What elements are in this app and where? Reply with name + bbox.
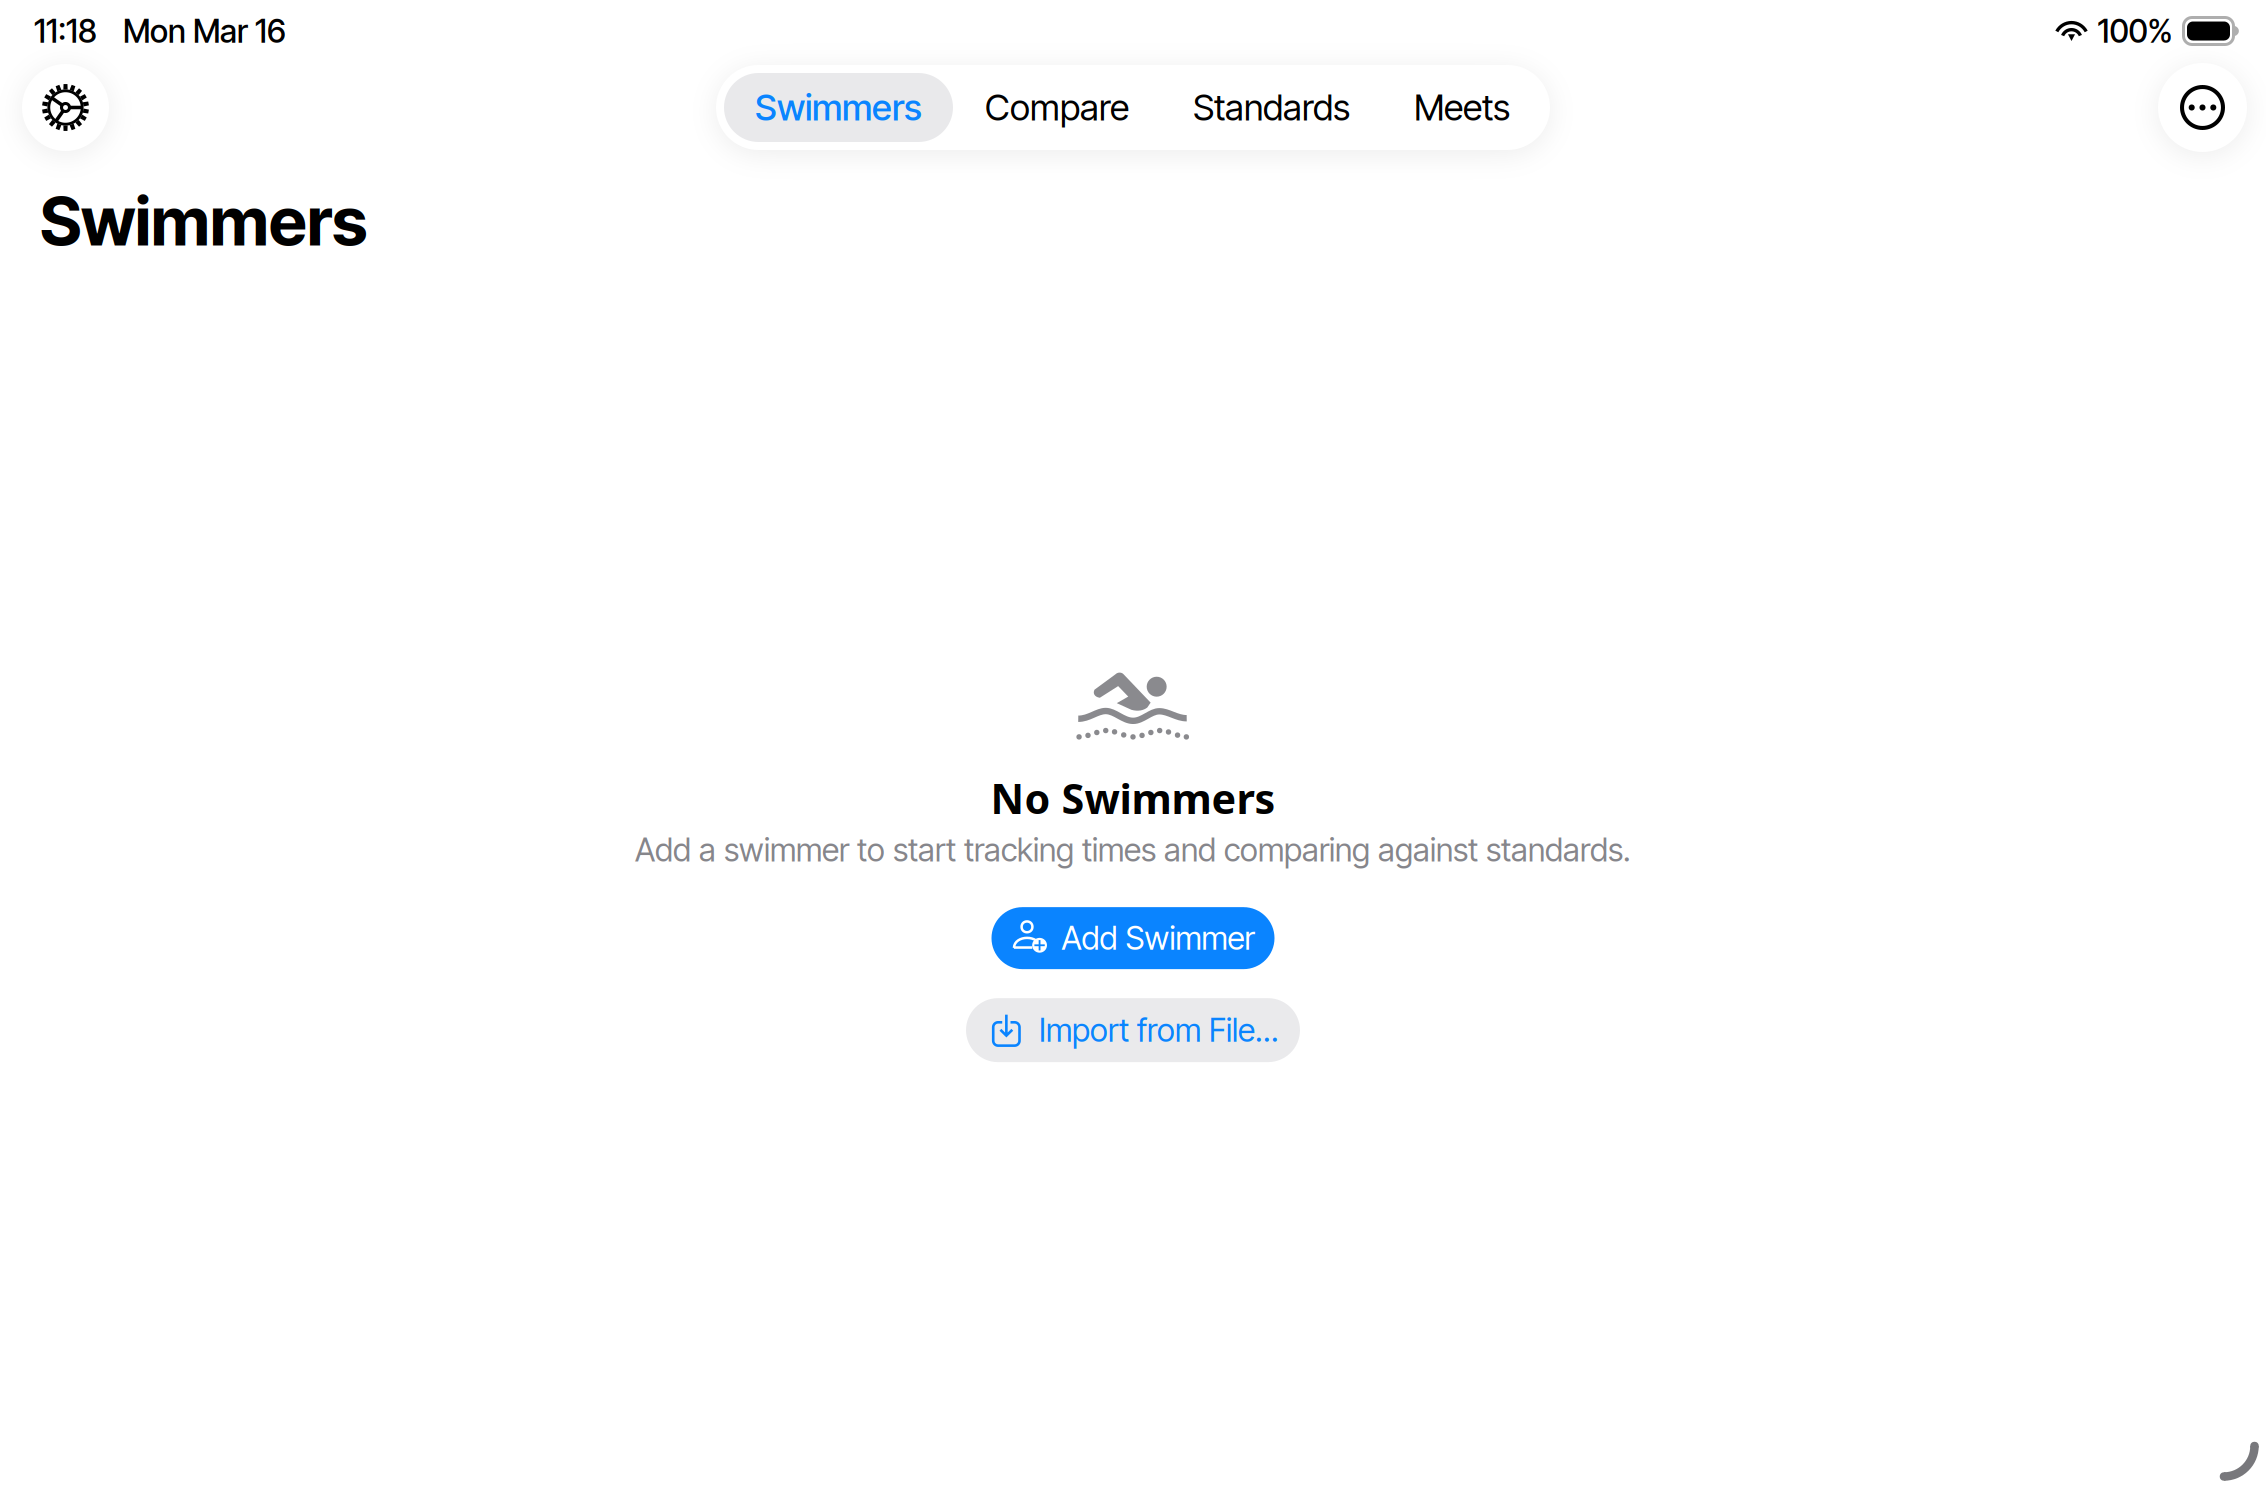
staticText: 100%: [2097, 12, 2172, 50]
button[interactable]: More options: [2158, 63, 2247, 152]
button[interactable]: Settings: [22, 64, 109, 151]
staticText: Swimmers: [755, 86, 922, 129]
button[interactable]: Add Swimmer: [991, 907, 1274, 969]
button[interactable]: Swimmers: [724, 73, 953, 142]
staticText: Standards: [1193, 86, 1350, 129]
button[interactable]: Meets: [1382, 73, 1542, 142]
button[interactable]: Import from File...: [966, 998, 1300, 1062]
staticText: 11:18: [34, 12, 97, 50]
staticText: Add a swimmer to start tracking times an…: [635, 830, 1631, 869]
staticText: No Swimmers: [990, 770, 1275, 825]
staticText: Compare: [985, 86, 1129, 129]
staticText: Meets: [1414, 86, 1510, 129]
button[interactable]: Compare: [953, 73, 1161, 142]
staticText: Import from File...: [1039, 1011, 1279, 1049]
staticText: Mon Mar 16: [123, 12, 286, 50]
button[interactable]: Standards: [1161, 73, 1382, 142]
staticText: Swimmers: [40, 181, 367, 262]
staticText: Add Swimmer: [1061, 919, 1254, 957]
